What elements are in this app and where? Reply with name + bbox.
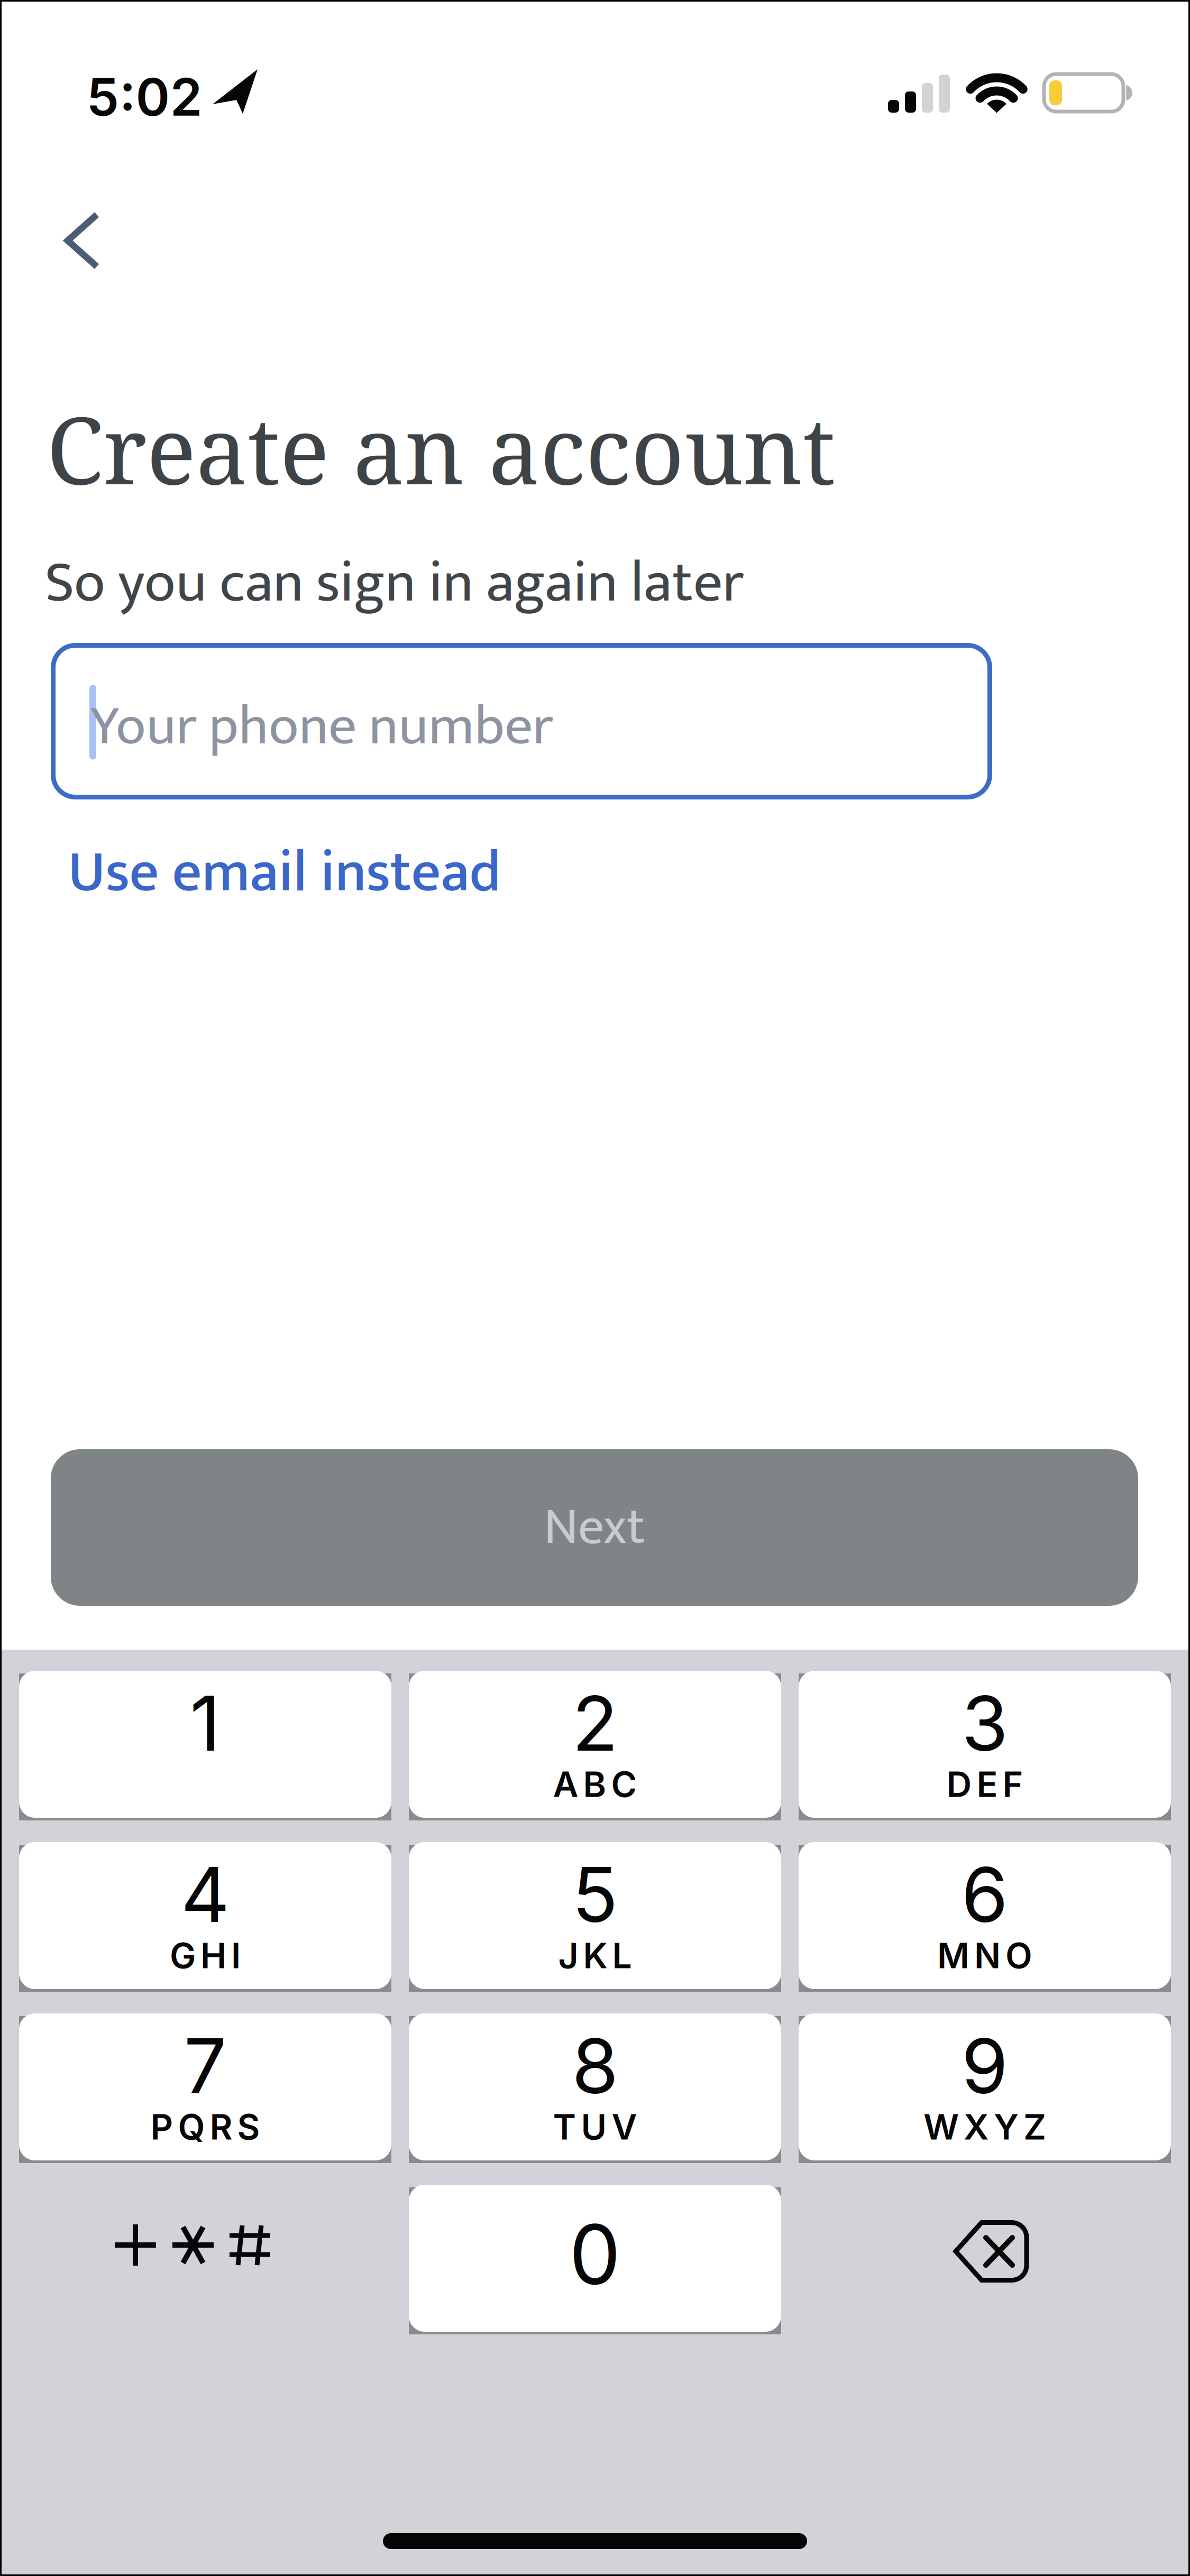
button[interactable]: 4 <box>19 1842 391 1989</box>
staticText: MNO <box>937 1934 1032 1977</box>
staticText: DEF <box>946 1763 1023 1805</box>
staticText: 4 <box>181 1849 230 1940</box>
staticText: JKL <box>558 1934 632 1977</box>
staticText: 6 <box>961 1849 1008 1940</box>
staticText: 7 <box>184 2020 227 2112</box>
button[interactable]: Use email instead <box>68 825 501 921</box>
staticText: Your phone number <box>90 680 553 773</box>
staticText: 5:02 <box>86 65 202 128</box>
staticText: 9 <box>961 2020 1008 2112</box>
button[interactable]: 0 <box>409 2185 781 2332</box>
button[interactable] <box>0 0 1190 2576</box>
staticText: 2 <box>572 1677 618 1769</box>
staticText: 3 <box>962 1677 1008 1769</box>
staticText: Create an account <box>47 386 835 511</box>
staticText: Use email instead <box>68 825 501 921</box>
staticText: GHI <box>170 1934 241 1977</box>
button[interactable] <box>0 0 1190 2576</box>
staticText: 8 <box>572 2020 618 2112</box>
button[interactable]: 3 <box>799 1671 1171 1818</box>
button[interactable]: 8 <box>409 2013 781 2160</box>
button[interactable] <box>51 643 992 799</box>
staticText: ABC <box>553 1763 637 1805</box>
staticText: 1 <box>190 1677 221 1769</box>
button[interactable] <box>0 0 1190 2576</box>
staticText: So you can sign in again later <box>45 535 744 631</box>
staticText: PQRS <box>150 2106 260 2148</box>
staticText: 0 <box>569 2205 621 2303</box>
staticText: TUV <box>553 2106 637 2148</box>
button[interactable]: 9 <box>799 2013 1171 2160</box>
staticText: 5 <box>572 1849 618 1940</box>
button[interactable]: 6 <box>799 1842 1171 1989</box>
button[interactable]: 5 <box>409 1842 781 1989</box>
button[interactable]: Next <box>51 1449 1138 1606</box>
staticText: WXYZ <box>923 2106 1046 2148</box>
button[interactable]: 2 <box>409 1671 781 1818</box>
button[interactable]: 1 <box>19 1671 391 1818</box>
staticText: Next <box>544 1485 645 1570</box>
button[interactable]: 7 <box>19 2013 391 2160</box>
